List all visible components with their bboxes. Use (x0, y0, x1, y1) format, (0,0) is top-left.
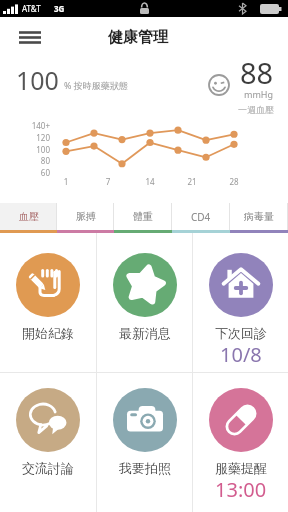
staticText: 病毒量 (244, 210, 274, 223)
staticText: 13:00 (215, 476, 267, 503)
staticText: 140+ (28, 120, 50, 131)
staticText: 60 (28, 167, 50, 178)
staticText: 1 (56, 176, 76, 187)
button[interactable]: 病毒量 (230, 203, 288, 230)
staticText: 脈搏 (76, 210, 96, 223)
staticText: 88 (240, 53, 274, 92)
staticText: 21 (182, 176, 202, 187)
button[interactable]: 血壓 (0, 203, 57, 230)
staticText: 體重 (133, 210, 153, 223)
staticText: 10/8 (220, 341, 262, 368)
staticText: 100 (16, 63, 59, 97)
staticText: % 按時服藥狀態 (64, 79, 128, 91)
staticText: 下次回診 (215, 325, 267, 341)
staticText: 交流討論 (22, 460, 74, 476)
button[interactable]: 最新消息 (97, 233, 192, 372)
staticText: 28 (224, 176, 244, 187)
staticText: 服藥提醒 (215, 460, 267, 476)
staticText: 3G (54, 3, 65, 14)
button[interactable]: 我要拍照 (97, 373, 192, 512)
button[interactable]: 服藥提醒 (193, 373, 288, 512)
button[interactable]: 開始紀錄 (0, 233, 96, 372)
staticText: 100 (28, 144, 50, 155)
staticText: CD4 (191, 210, 211, 224)
staticText: 血壓 (19, 210, 39, 223)
staticText: 我要拍照 (119, 460, 171, 476)
button[interactable]: CD4 (172, 203, 230, 230)
button[interactable]: 脈搏 (57, 203, 114, 230)
staticText: mmHg (244, 88, 274, 100)
staticText: 開始紀錄 (22, 325, 74, 341)
button[interactable]: 交流討論 (0, 373, 96, 512)
staticText: 120 (28, 132, 50, 143)
staticText: 7 (98, 176, 118, 187)
staticText: 一週血壓 (238, 104, 274, 115)
button[interactable]: 下次回診 (193, 233, 288, 372)
staticText: 14 (140, 176, 160, 187)
button[interactable] (12, 19, 48, 55)
staticText: AT&T (22, 3, 41, 14)
staticText: 最新消息 (119, 325, 171, 341)
staticText: 80 (28, 155, 50, 166)
button[interactable]: 體重 (114, 203, 172, 230)
staticText: 健康管理 (108, 28, 168, 47)
